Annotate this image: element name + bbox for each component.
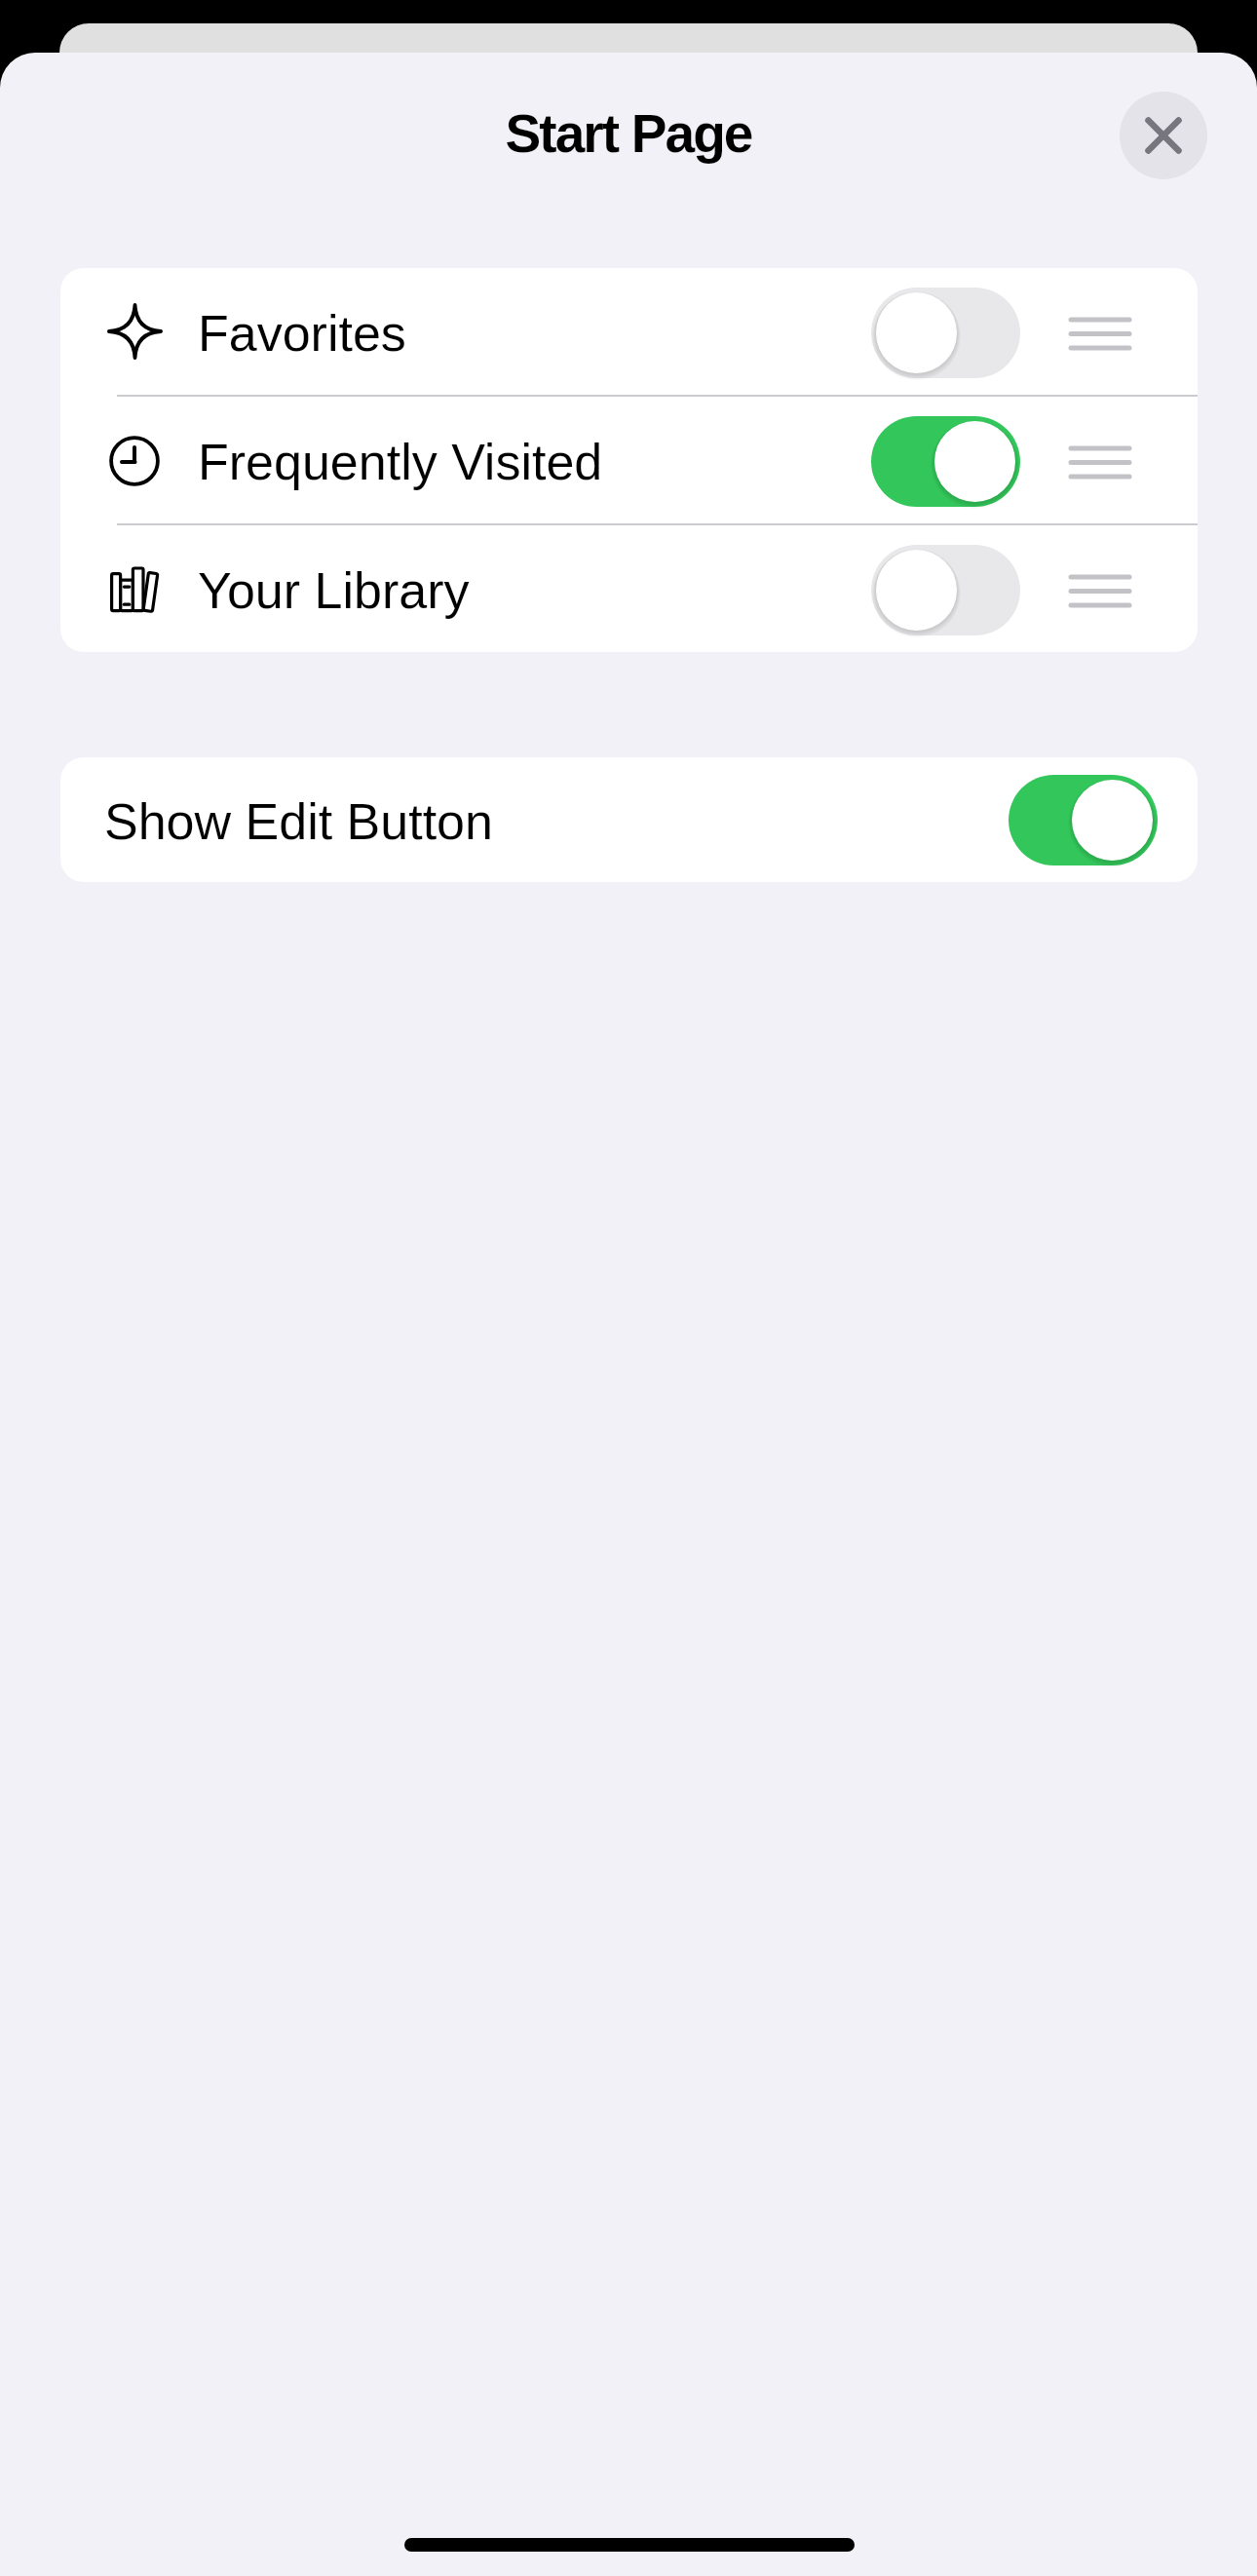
staticText: Start Page xyxy=(0,103,1257,163)
staticText: Favorites xyxy=(198,305,406,362)
button[interactable]: Favorites xyxy=(60,268,1198,395)
button[interactable]: Toggle on xyxy=(1009,775,1158,865)
button[interactable]: Show Edit Button xyxy=(60,757,1198,882)
button[interactable]: Your Library xyxy=(60,525,1198,652)
button[interactable]: Toggle off xyxy=(871,288,1020,378)
staticText: Show Edit Button xyxy=(104,793,493,850)
button[interactable]: Frequently Visited xyxy=(60,397,1198,523)
staticText: Frequently Visited xyxy=(198,434,603,490)
button[interactable]: Reorder xyxy=(1059,413,1141,511)
button[interactable]: Close xyxy=(1120,92,1207,179)
button[interactable]: Toggle off xyxy=(871,545,1020,635)
staticText: Your Library xyxy=(198,562,470,619)
button[interactable]: Reorder xyxy=(1059,285,1141,382)
button[interactable]: Toggle on xyxy=(871,416,1020,507)
button[interactable]: Reorder xyxy=(1059,542,1141,639)
